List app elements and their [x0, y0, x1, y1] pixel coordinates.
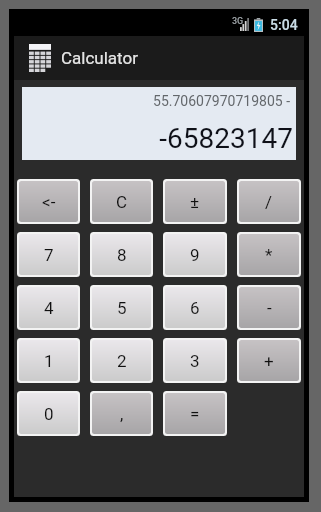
button[interactable]: + [239, 340, 299, 381]
staticText: 6 [190, 298, 200, 318]
staticText: 5 [117, 298, 127, 318]
button[interactable]: * [239, 234, 299, 275]
button[interactable]: 7 [19, 234, 78, 275]
staticText: 55.70607970719805 - [153, 93, 290, 109]
staticText: ± [190, 192, 200, 212]
staticText: 5:04 [270, 17, 298, 33]
staticText: / [265, 192, 273, 212]
button[interactable]: , [92, 393, 151, 434]
staticText: - [267, 298, 272, 318]
staticText: 0 [44, 404, 54, 424]
staticText: = [190, 404, 200, 424]
other: Calculator [29, 44, 51, 72]
staticText: 7 [44, 245, 54, 265]
button[interactable]: 3 [165, 340, 225, 381]
other: Battery charging [254, 18, 263, 32]
staticText: 3G [232, 16, 244, 27]
button[interactable]: 9 [165, 234, 225, 275]
button[interactable]: 0 [19, 393, 78, 434]
button[interactable]: - [239, 287, 299, 328]
staticText: 1 [44, 351, 54, 371]
button[interactable]: 1 [19, 340, 78, 381]
button[interactable]: 4 [19, 287, 78, 328]
button[interactable]: <- [19, 181, 78, 222]
button[interactable]: = [165, 393, 225, 434]
staticText: <- [42, 192, 56, 212]
button[interactable]: ± [165, 181, 225, 222]
button[interactable]: Calculator [14, 36, 304, 80]
staticText: * [265, 245, 273, 265]
button[interactable]: 5 [92, 287, 151, 328]
staticText: 8 [117, 245, 127, 265]
staticText: + [264, 351, 274, 371]
staticText: -65823147 [159, 122, 293, 155]
button[interactable]: 8 [92, 234, 151, 275]
button[interactable]: / [239, 181, 299, 222]
button[interactable]: C [92, 181, 151, 222]
staticText: 2 [117, 351, 127, 371]
staticText: , [120, 404, 124, 424]
staticText: 3 [190, 351, 200, 371]
other: Signal strength [240, 18, 249, 31]
staticText: 4 [44, 298, 54, 318]
staticText: 9 [190, 245, 200, 265]
staticText: Calculator [61, 48, 138, 68]
button[interactable]: 6 [165, 287, 225, 328]
button[interactable]: 2 [92, 340, 151, 381]
staticText: C [116, 192, 128, 212]
